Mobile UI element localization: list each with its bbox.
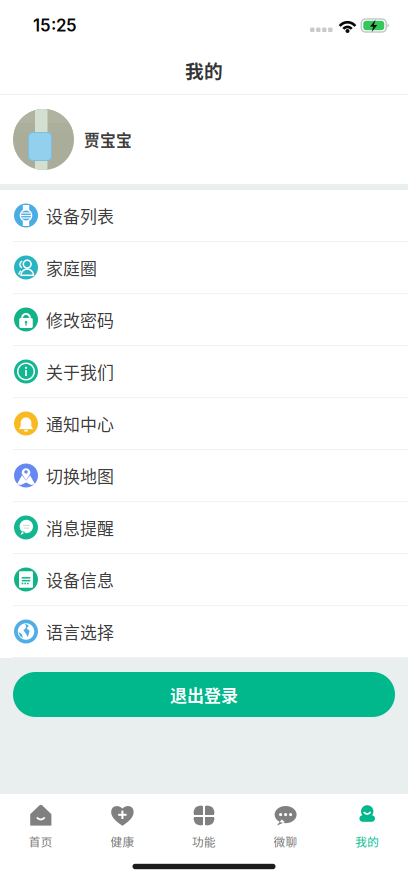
button[interactable]: 功能 [163,794,245,850]
staticText: 15:25 [33,15,77,36]
staticText: 首页 [29,833,53,850]
button[interactable]: 家庭圈 [0,242,408,294]
button[interactable]: 消息提醒 [0,502,408,554]
button[interactable]: 退出登录 [0,672,408,717]
staticText: 退出登录 [170,682,238,707]
button[interactable]: 设备信息 [0,554,408,606]
staticText: 消息提醒 [46,515,114,540]
button[interactable]: 微聊 [245,794,326,850]
staticText: 我的 [185,56,223,83]
button[interactable]: 关于我们 [0,346,408,398]
button[interactable]: 首页 [0,794,82,850]
button[interactable]: 设备列表 [0,190,408,242]
staticText: 我的 [355,833,379,850]
staticText: 语言选择 [46,619,114,644]
button[interactable]: 我的 [326,794,408,850]
button[interactable]: 切换地图 [0,450,408,502]
button[interactable]: 修改密码 [0,294,408,346]
button[interactable]: 健康 [82,794,163,850]
staticText: 切换地图 [46,463,114,488]
staticText: 设备列表 [46,203,114,228]
staticText: 贾宝宝 [84,128,132,151]
staticText: 通知中心 [46,411,114,436]
staticText: 关于我们 [46,359,114,384]
button[interactable]: 通知中心 [0,398,408,450]
button[interactable]: 语言选择 [0,606,408,658]
staticText: 健康 [110,833,134,850]
staticText: 微聊 [274,833,298,850]
staticText: 修改密码 [46,307,114,332]
staticText: 设备信息 [46,567,114,592]
staticText: 家庭圈 [46,255,97,280]
staticText: 功能 [192,833,216,850]
